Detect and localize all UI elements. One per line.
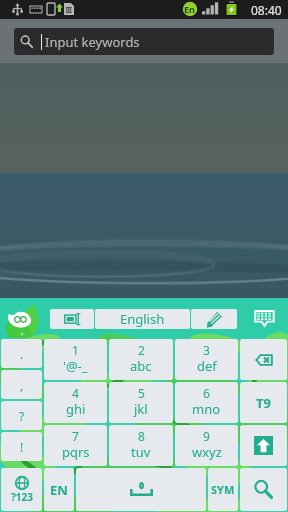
staticText: . [20,346,24,362]
staticText: SYM [211,482,235,497]
staticText: tuv [131,443,151,461]
staticText: 7 [72,428,79,444]
button[interactable]: , [1,370,42,399]
staticText: En [184,3,195,15]
button[interactable]: 5 [109,382,173,423]
button[interactable]: Handwriting [191,309,237,329]
button[interactable]: 6 [175,382,238,423]
staticText: 1 [72,342,79,358]
button[interactable]: EN [44,468,74,511]
staticText: def [197,357,217,375]
button[interactable]: Backspace [240,339,287,380]
button[interactable]: 8 [109,425,173,466]
staticText: mno [192,400,221,418]
staticText: 4 [72,385,79,401]
button[interactable]: Theme [50,309,94,329]
staticText: ! [20,439,24,455]
button[interactable]: Hide keyboard [253,306,276,329]
staticText: Input keywords [45,33,140,51]
button[interactable]: 9 [175,425,238,466]
staticText: 9 [203,428,210,444]
button[interactable]: 4 [44,382,107,423]
button[interactable]: ? [1,401,42,430]
staticText: 3 [203,342,210,358]
staticText: T9 [256,394,271,412]
button[interactable]: SYM [208,468,238,511]
staticText: pqrs [62,443,90,461]
button[interactable]: . [1,339,42,368]
button[interactable]: 1 [44,339,107,380]
staticText: , [20,377,24,393]
button[interactable]: Input keywords [14,28,274,55]
staticText: EN [50,481,68,499]
staticText: '@-_ [63,357,88,375]
staticText: ? [19,408,25,424]
staticText: 6 [203,385,210,401]
staticText: wxyz [192,443,222,461]
button[interactable]: Space [76,468,206,511]
staticText: ghi [66,400,86,418]
staticText: ?123 [11,490,33,504]
button[interactable]: Shift [240,425,287,466]
staticText: 2 [138,342,145,358]
button[interactable]: ! [1,432,42,461]
button[interactable]: 3 [175,339,238,380]
staticText: 8 [138,428,145,444]
staticText: English [120,310,165,328]
button[interactable]: 7 [44,425,107,466]
staticText: abc [130,357,152,375]
button[interactable]: Search [240,468,287,511]
staticText: 5 [138,385,145,401]
button[interactable]: T9 [240,382,287,423]
staticText: 08:40 [251,2,282,18]
button[interactable]: 2 [109,339,173,380]
staticText: jkl [134,400,148,418]
button[interactable]: English [95,309,190,329]
button[interactable]: ?123 [1,468,42,511]
